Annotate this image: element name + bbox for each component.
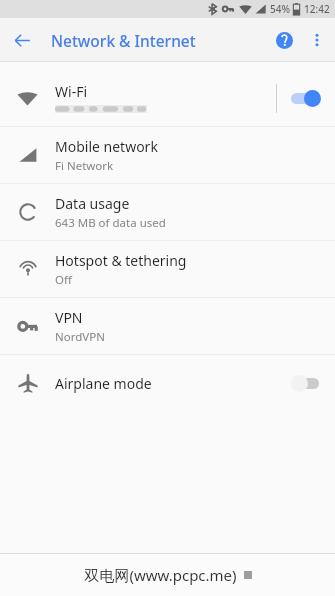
staticText: 643 MB of data used — [55, 215, 166, 231]
staticText: VPN — [55, 308, 83, 327]
staticText: Airplane mode — [55, 374, 152, 393]
staticText: NordVPN — [55, 329, 105, 345]
staticText: 双电网(www.pcpc.me) — [84, 565, 237, 585]
button[interactable]: Hotspot & tethering — [0, 241, 335, 297]
button[interactable]: Data usage — [0, 184, 335, 240]
button[interactable]: Airplane mode — [0, 355, 335, 411]
button[interactable]: VPN — [0, 298, 335, 354]
staticText: Data usage — [55, 194, 130, 213]
button[interactable]: Back — [6, 24, 38, 56]
staticText: Fi Network — [55, 158, 114, 174]
button[interactable]: Wi-Fi — [0, 70, 335, 126]
staticText: Mobile network — [55, 137, 158, 156]
button[interactable]: Wi-Fi toggle — [277, 70, 335, 126]
staticText: Wi-Fi — [55, 82, 88, 101]
staticText: Off — [55, 272, 72, 288]
staticText: Network & Internet — [51, 30, 196, 51]
staticText: 12:42 — [304, 2, 330, 16]
button[interactable]: More options — [301, 24, 333, 56]
button[interactable]: Help — [267, 23, 301, 57]
button[interactable]: Airplane mode toggle — [277, 355, 335, 411]
button[interactable]: Mobile network — [0, 127, 335, 183]
staticText: 54% — [270, 2, 290, 16]
staticText: Hotspot & tethering — [55, 251, 187, 270]
